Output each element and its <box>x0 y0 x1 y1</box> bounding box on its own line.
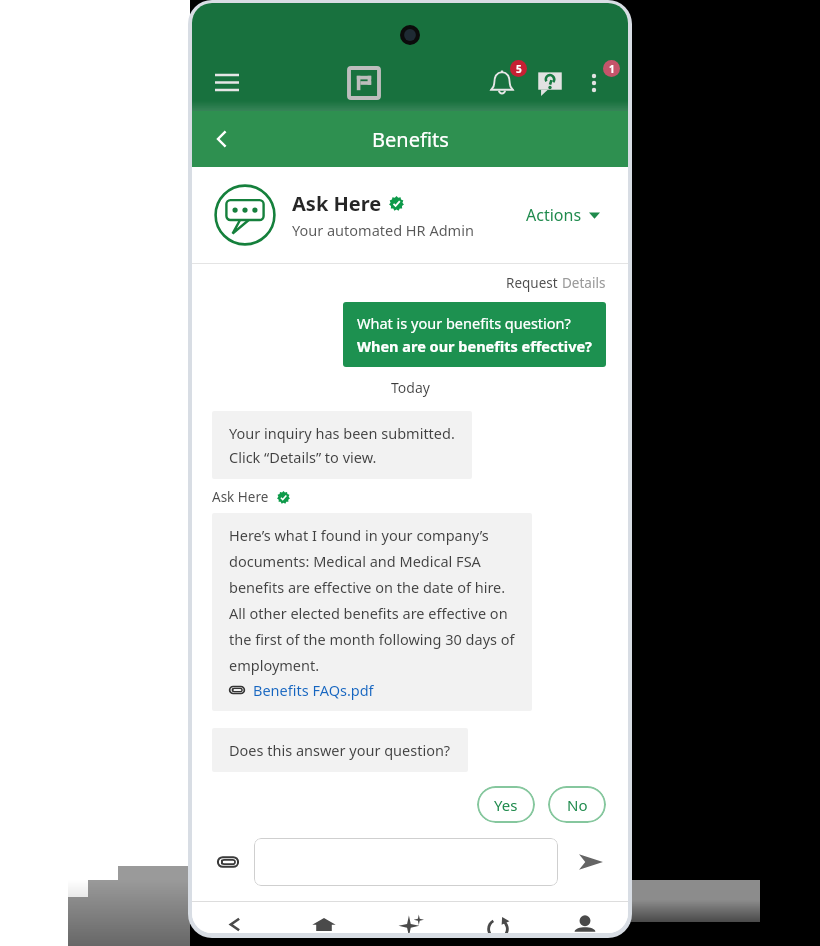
button[interactable]: Attach file <box>208 842 248 882</box>
staticText: Does this answer your question? <box>229 740 451 760</box>
staticText: Ask Here <box>292 190 382 217</box>
button[interactable]: Benefits FAQs.pdf <box>229 680 374 700</box>
button[interactable]: Send <box>570 841 612 883</box>
staticText: All other elected benefits are effective… <box>229 603 508 623</box>
staticText: Details <box>562 274 606 292</box>
button[interactable]: Account <box>541 902 628 933</box>
staticText: Actions <box>526 204 582 226</box>
button[interactable]: More options, 1 new <box>574 63 614 103</box>
button[interactable]: Request <box>506 274 606 292</box>
staticText: Benefits FAQs.pdf <box>253 680 374 700</box>
staticText: When are our benefits effective? <box>357 336 592 356</box>
staticText: Request <box>506 274 562 292</box>
button[interactable]: Home <box>280 902 367 933</box>
staticText: Today <box>391 378 430 397</box>
staticText: What is your benefits question? <box>357 313 571 333</box>
staticText: 1 <box>609 62 615 76</box>
button[interactable]: No <box>548 786 606 823</box>
staticText: Benefits <box>372 126 449 153</box>
staticText: No <box>567 795 588 815</box>
staticText: Your inquiry has been submitted. <box>229 423 455 443</box>
button[interactable]: IWant <box>367 902 454 933</box>
staticText: Here’s what I found in your company’s <box>229 525 489 545</box>
staticText: 5 <box>516 62 522 76</box>
button[interactable]: Actions <box>520 198 606 232</box>
staticText: benefits are effective on the date of hi… <box>229 577 506 597</box>
staticText: Yes <box>494 795 518 815</box>
button[interactable]: Help <box>528 61 572 105</box>
button[interactable]: Back <box>192 902 280 933</box>
staticText: Your automated HR Admin <box>292 220 474 240</box>
staticText: Ask Here <box>212 488 269 506</box>
button[interactable]: Yes <box>477 786 535 823</box>
button[interactable]: Message input <box>254 838 558 886</box>
staticText: Click “Details” to view. <box>229 447 377 467</box>
button[interactable]: Refresh <box>454 902 541 933</box>
button[interactable]: Home logo <box>342 61 386 105</box>
button[interactable]: Notifications, 5 new <box>480 61 524 105</box>
staticText: the first of the month following 30 days… <box>229 629 515 649</box>
button[interactable]: Back <box>200 117 244 161</box>
staticText: documents: Medical and Medical FSA <box>229 551 481 571</box>
staticText: employment. <box>229 655 320 675</box>
button[interactable]: Menu <box>206 62 248 104</box>
